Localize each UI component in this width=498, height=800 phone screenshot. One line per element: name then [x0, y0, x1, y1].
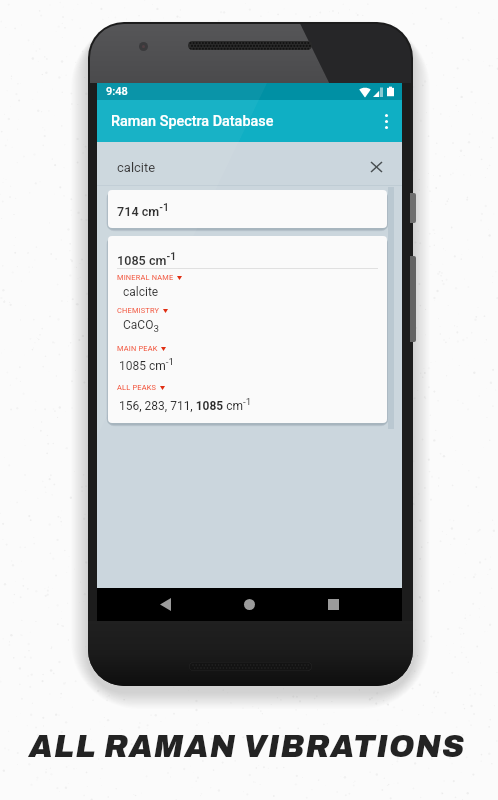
- staticText: 714 cm-1: [117, 201, 169, 219]
- button[interactable]: Back: [145, 588, 185, 621]
- staticText: calcite: [123, 285, 159, 299]
- button[interactable]: calcite: [97, 142, 402, 186]
- button[interactable]: Raman Spectra Database: [97, 100, 402, 142]
- staticText: Raman Spectra Database: [111, 113, 274, 130]
- button[interactable]: 714 cm-1: [108, 190, 387, 228]
- staticText: MAIN PEAK: [117, 344, 158, 353]
- button[interactable]: Home: [229, 588, 269, 621]
- staticText: 156, 283, 711, 1085 cm-1: [119, 396, 252, 413]
- staticText: MINERAL NAME: [117, 273, 174, 282]
- staticText: 9:48: [106, 85, 128, 98]
- button[interactable]: 1085 cm-1: [108, 236, 387, 423]
- staticText: CHEMISTRY: [117, 306, 160, 315]
- staticText: 1085 cm-1: [117, 250, 177, 268]
- button[interactable]: Recent apps: [313, 588, 353, 621]
- staticText: 1085 cm-1: [119, 356, 174, 373]
- staticText: ALL RAMAN VIBRATIONS: [29, 730, 466, 763]
- button[interactable]: More options: [370, 100, 402, 142]
- staticText: calcite: [117, 160, 156, 175]
- button[interactable]: Clear search: [363, 154, 389, 180]
- staticText: ALL PEAKS: [117, 383, 157, 392]
- staticText: CaCO3: [123, 318, 159, 334]
